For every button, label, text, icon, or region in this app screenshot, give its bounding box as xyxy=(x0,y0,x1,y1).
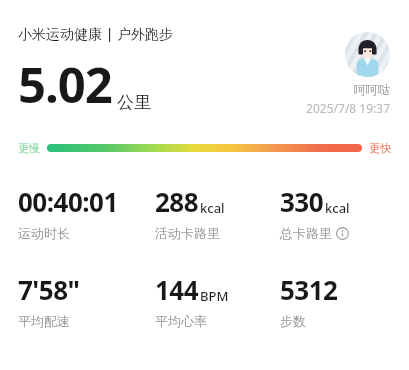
staticText: 2025/7/8 19:37 xyxy=(306,100,390,116)
button[interactable]: 5312 xyxy=(280,272,399,329)
staticText: 5312 xyxy=(280,272,338,307)
staticText: kcal xyxy=(200,199,225,217)
staticText: 活动卡路里 xyxy=(155,225,220,241)
staticText: 5.02 xyxy=(18,51,112,118)
button[interactable]: 呵呵哒 xyxy=(306,32,390,116)
other: Info xyxy=(336,227,349,240)
staticText: 更慢 xyxy=(18,141,40,155)
staticText: 呵呵哒 xyxy=(354,82,390,97)
staticText: 平均心率 xyxy=(155,313,207,329)
staticText: BPM xyxy=(200,287,229,305)
staticText: 更快 xyxy=(369,141,391,155)
staticText: 00:40:01 xyxy=(18,184,118,219)
button[interactable]: 00:40:01 xyxy=(18,184,155,241)
button[interactable]: 144 xyxy=(155,272,280,329)
staticText: 运动时长 xyxy=(18,225,70,241)
button[interactable]: 小米运动健康 | 户外跑步 xyxy=(18,24,173,43)
button[interactable]: 7'58" xyxy=(18,272,155,329)
staticText: 330 xyxy=(280,184,324,219)
staticText: 公里 xyxy=(117,92,151,113)
staticText: 288 xyxy=(155,184,199,219)
button[interactable]: 330 xyxy=(280,184,399,241)
staticText: 步数 xyxy=(280,313,306,329)
staticText: 7'58" xyxy=(18,272,80,307)
staticText: 总卡路里 xyxy=(280,225,332,241)
staticText: kcal xyxy=(325,199,350,217)
button[interactable]: 288 xyxy=(155,184,280,241)
staticText: 144 xyxy=(155,272,199,307)
staticText: 平均配速 xyxy=(18,313,70,329)
